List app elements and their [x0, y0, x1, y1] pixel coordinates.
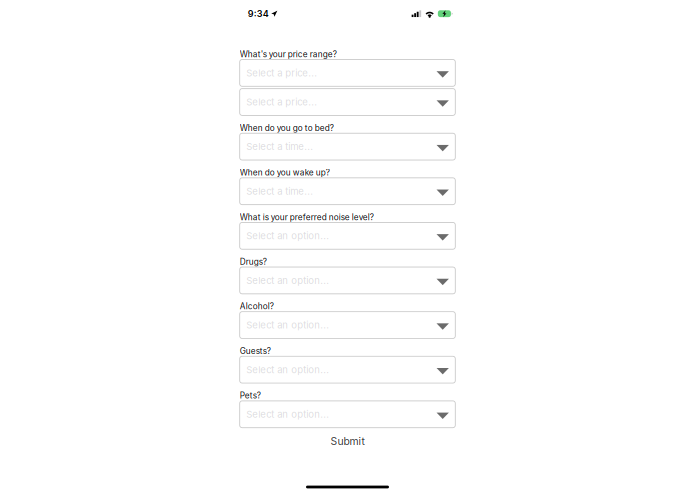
staticText: When do you wake up? [240, 167, 330, 177]
button[interactable]: Select an option... [240, 356, 455, 383]
staticText: Pets? [240, 391, 261, 401]
staticText: Select an option... [246, 319, 329, 331]
staticText: Select a price... [246, 67, 317, 79]
button[interactable]: Select an option... [240, 312, 455, 338]
button[interactable]: Select a time... [240, 133, 455, 160]
staticText: Select an option... [246, 408, 329, 420]
staticText: When do you go to bed? [240, 123, 334, 133]
staticText: Guests? [240, 346, 271, 356]
button[interactable]: Select a price... [240, 59, 455, 86]
staticText: Alcohol? [240, 301, 274, 311]
staticText: Drugs? [240, 257, 267, 267]
button[interactable]: Submit [287, 434, 407, 448]
staticText: Select an option... [246, 364, 329, 375]
staticText: Select a time... [246, 141, 313, 152]
staticText: Submit [330, 435, 364, 447]
staticText: What's your price range? [240, 49, 337, 59]
button[interactable]: Select a price... [240, 89, 455, 115]
staticText: 9:34 [248, 8, 269, 19]
staticText: What is your preferred noise level? [240, 212, 374, 222]
staticText: Select an option... [246, 275, 329, 286]
button[interactable]: Select an option... [240, 267, 455, 294]
staticText: Select a price... [246, 96, 317, 108]
button[interactable]: Select an option... [240, 222, 455, 249]
staticText: Select a time... [246, 185, 313, 197]
button[interactable]: Select an option... [240, 401, 455, 428]
button[interactable]: Select a time... [240, 178, 455, 205]
staticText: Select an option... [246, 230, 329, 242]
